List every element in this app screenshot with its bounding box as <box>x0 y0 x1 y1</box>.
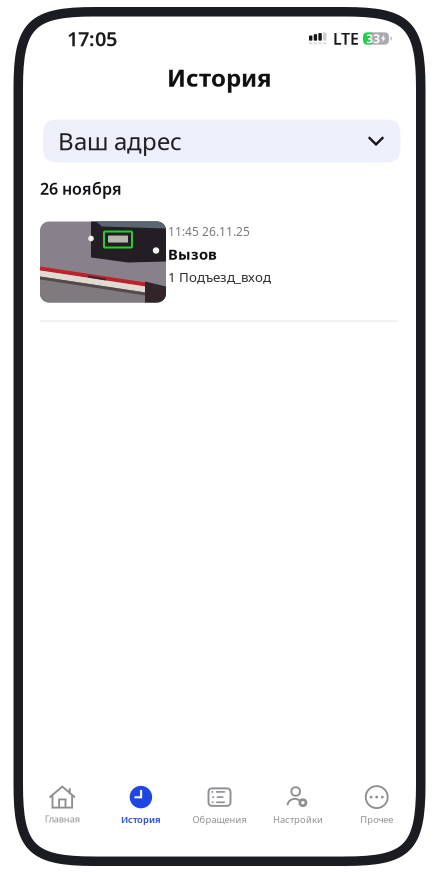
staticText: LTE <box>333 28 359 49</box>
staticText: История <box>167 62 272 93</box>
button[interactable]: Обращения <box>180 784 259 825</box>
staticText: История <box>121 813 161 825</box>
staticText: Главная <box>45 813 80 825</box>
staticText: 11:45 26.11.25 <box>168 223 250 239</box>
staticText: 33 <box>366 30 380 46</box>
button[interactable]: 11:45 26.11.25 <box>40 221 399 321</box>
staticText: 17:05 <box>67 25 117 52</box>
button[interactable]: Прочее <box>337 784 416 825</box>
staticText: Вызов <box>168 244 217 264</box>
staticText: Прочее <box>360 813 393 825</box>
button[interactable]: Настройки <box>259 784 337 825</box>
staticText: Ваш адрес <box>58 125 182 157</box>
staticText: Обращения <box>192 813 246 825</box>
button[interactable]: Ваш адрес <box>43 119 400 162</box>
staticText: 1 Подъезд_вход <box>168 268 271 286</box>
button[interactable]: История <box>102 784 180 825</box>
staticText: 26 ноября <box>40 178 122 199</box>
button[interactable]: Главная <box>23 785 102 825</box>
staticText: Настройки <box>273 813 323 825</box>
